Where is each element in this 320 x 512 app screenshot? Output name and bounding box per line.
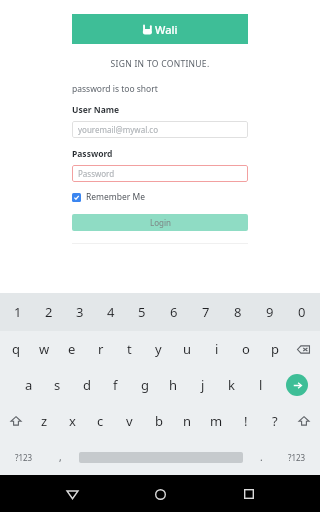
button[interactable]: 2: [33, 293, 64, 331]
button[interactable]: h: [159, 367, 188, 403]
button[interactable]: Remember Me: [72, 191, 146, 203]
button[interactable]: .: [247, 439, 275, 475]
button[interactable]: 0: [286, 293, 318, 331]
button[interactable]: d: [72, 367, 101, 403]
button[interactable]: i: [202, 331, 231, 367]
button[interactable]: w: [30, 331, 58, 367]
staticText: 7: [202, 303, 210, 321]
staticText: b: [155, 412, 163, 430]
staticText: q: [12, 340, 20, 358]
staticText: ?123: [15, 452, 33, 463]
staticText: x: [69, 412, 76, 430]
button[interactable]: q: [2, 331, 30, 367]
button[interactable]: s: [43, 367, 72, 403]
staticText: ,: [59, 450, 62, 464]
button[interactable]: Login: [72, 214, 248, 231]
staticText: f: [113, 376, 118, 394]
button[interactable]: 5: [126, 293, 158, 331]
button[interactable]: Password: [72, 165, 248, 182]
button[interactable]: c: [86, 403, 115, 439]
button[interactable]: l: [246, 367, 275, 403]
button[interactable]: m: [202, 403, 231, 439]
button[interactable]: 7: [190, 293, 222, 331]
staticText: Wali: [155, 22, 178, 37]
button[interactable]: p: [260, 331, 289, 367]
button[interactable]: Enter: [275, 367, 318, 403]
staticText: r: [98, 340, 104, 358]
staticText: j: [201, 376, 205, 394]
button[interactable]: n: [173, 403, 202, 439]
button[interactable]: o: [231, 331, 260, 367]
staticText: m: [210, 412, 223, 430]
staticText: n: [183, 412, 192, 430]
staticText: w: [39, 340, 50, 358]
staticText: g: [141, 376, 149, 394]
button[interactable]: Back: [55, 477, 89, 511]
button[interactable]: f: [101, 367, 130, 403]
staticText: User Name: [72, 104, 120, 116]
button[interactable]: z: [30, 403, 58, 439]
staticText: t: [127, 340, 132, 358]
button[interactable]: v: [115, 403, 144, 439]
button[interactable]: !: [231, 403, 260, 439]
staticText: youremail@mywal.co: [78, 124, 159, 135]
button[interactable]: Backspace: [289, 331, 318, 367]
button[interactable]: e: [58, 331, 86, 367]
staticText: 9: [266, 303, 274, 321]
button[interactable]: youremail@mywal.co: [72, 121, 248, 138]
staticText: 1: [14, 303, 22, 321]
staticText: c: [97, 412, 104, 430]
button[interactable]: 8: [222, 293, 254, 331]
button[interactable]: g: [130, 367, 159, 403]
staticText: Login: [150, 217, 171, 228]
button[interactable]: Shift: [2, 403, 30, 439]
staticText: z: [41, 412, 48, 430]
button[interactable]: Home: [143, 477, 177, 511]
button[interactable]: 3: [64, 293, 95, 331]
staticText: .: [260, 450, 263, 464]
button[interactable]: b: [144, 403, 173, 439]
staticText: 3: [76, 303, 84, 321]
staticText: d: [83, 376, 91, 394]
staticText: v: [126, 412, 133, 430]
staticText: 8: [234, 303, 242, 321]
staticText: l: [259, 376, 263, 394]
staticText: u: [183, 340, 192, 358]
staticText: Password: [72, 148, 113, 160]
staticText: 2: [45, 303, 53, 321]
button[interactable]: Shift right: [289, 403, 318, 439]
button[interactable]: k: [217, 367, 246, 403]
button[interactable]: ?123: [275, 439, 318, 475]
button[interactable]: j: [188, 367, 217, 403]
button[interactable]: u: [173, 331, 202, 367]
staticText: o: [242, 340, 250, 358]
staticText: Password: [78, 168, 115, 179]
button[interactable]: 1: [2, 293, 33, 331]
button[interactable]: 4: [95, 293, 126, 331]
staticText: 0: [298, 303, 306, 321]
staticText: k: [228, 376, 235, 394]
button[interactable]: 6: [158, 293, 190, 331]
staticText: ?: [272, 412, 278, 430]
button[interactable]: ,: [46, 439, 74, 475]
staticText: e: [68, 340, 76, 358]
staticText: a: [25, 376, 33, 394]
staticText: 6: [170, 303, 178, 321]
button[interactable]: ?: [260, 403, 289, 439]
staticText: SIGN IN TO CONTINUE.: [72, 58, 248, 70]
staticText: 4: [107, 303, 115, 321]
staticText: !: [244, 412, 248, 430]
button[interactable]: Recents: [232, 477, 266, 511]
staticText: ?123: [288, 452, 306, 463]
staticText: s: [54, 376, 61, 394]
button[interactable]: 9: [254, 293, 286, 331]
button[interactable]: a: [15, 367, 43, 403]
button[interactable]: y: [144, 331, 173, 367]
button[interactable]: t: [115, 331, 144, 367]
button[interactable]: x: [58, 403, 86, 439]
button[interactable]: ?123: [2, 439, 46, 475]
button[interactable]: r: [86, 331, 115, 367]
staticText: i: [215, 340, 219, 358]
staticText: h: [169, 376, 178, 394]
